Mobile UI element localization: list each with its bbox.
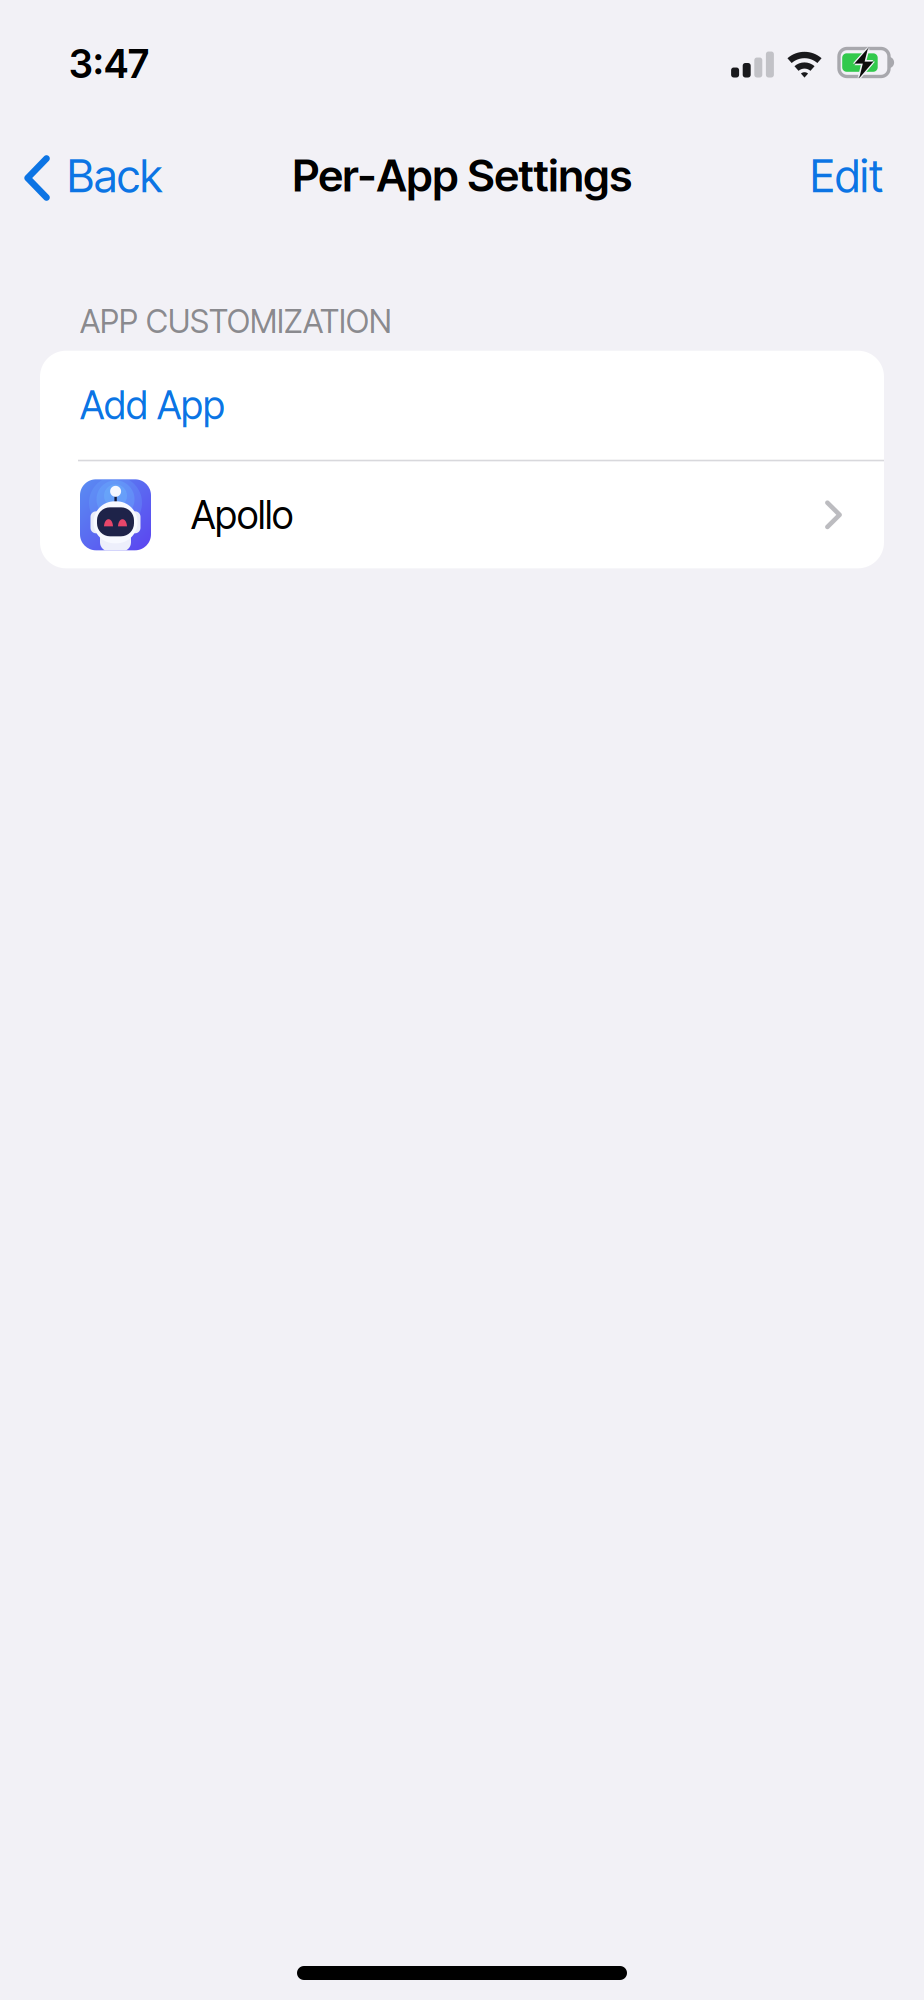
staticText: Edit: [810, 149, 883, 203]
staticText: Add App: [80, 382, 225, 429]
staticText: Per-App Settings: [292, 149, 631, 202]
staticText: APP CUSTOMIZATION: [80, 302, 392, 341]
staticText: Back: [67, 149, 162, 203]
button[interactable]: Back: [0, 129, 184, 219]
staticText: Apollo: [191, 491, 293, 538]
button[interactable]: Apollo: [40, 461, 884, 568]
button[interactable]: Add App: [40, 351, 884, 460]
button[interactable]: Edit: [785, 129, 924, 219]
staticText: 3:47: [69, 41, 149, 87]
